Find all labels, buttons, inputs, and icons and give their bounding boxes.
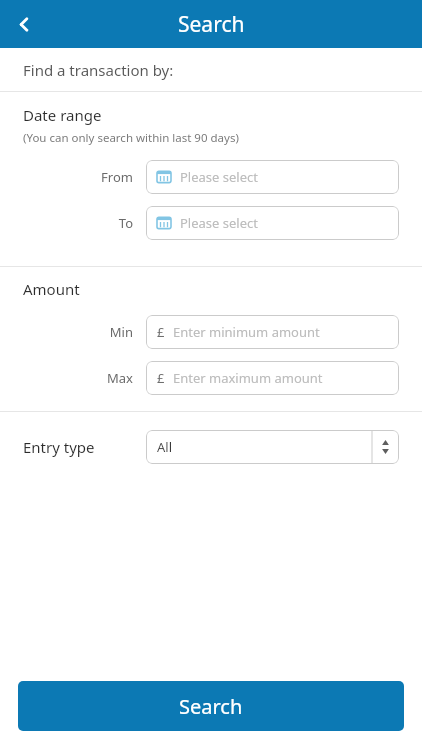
staticText: Enter minimum amount [173, 323, 320, 341]
staticText: Min [109, 323, 133, 341]
staticText: Date range [23, 105, 102, 125]
staticText: Search [178, 10, 245, 39]
staticText: (You can only search within last 90 days… [23, 130, 239, 146]
staticText: Max [107, 369, 133, 387]
staticText: All [157, 438, 173, 456]
button[interactable]: Back [0, 0, 48, 48]
button[interactable]: Search [18, 681, 404, 731]
staticText: From [101, 168, 133, 186]
staticText: Please select [180, 168, 258, 186]
staticText: To [118, 214, 133, 232]
button[interactable]: £ [146, 315, 399, 349]
staticText: Entry type [23, 437, 95, 457]
staticText: Amount [23, 279, 80, 299]
staticText: Please select [180, 214, 258, 232]
staticText: Enter maximum amount [173, 369, 323, 387]
button[interactable]: £ [146, 361, 399, 395]
staticText: £ [157, 369, 165, 387]
button[interactable]: Please select [146, 206, 399, 240]
staticText: Search [179, 693, 243, 720]
staticText: £ [157, 323, 165, 341]
staticText: Find a transaction by: [23, 60, 174, 80]
button[interactable]: Please select [146, 160, 399, 194]
button[interactable]: All [146, 430, 399, 464]
